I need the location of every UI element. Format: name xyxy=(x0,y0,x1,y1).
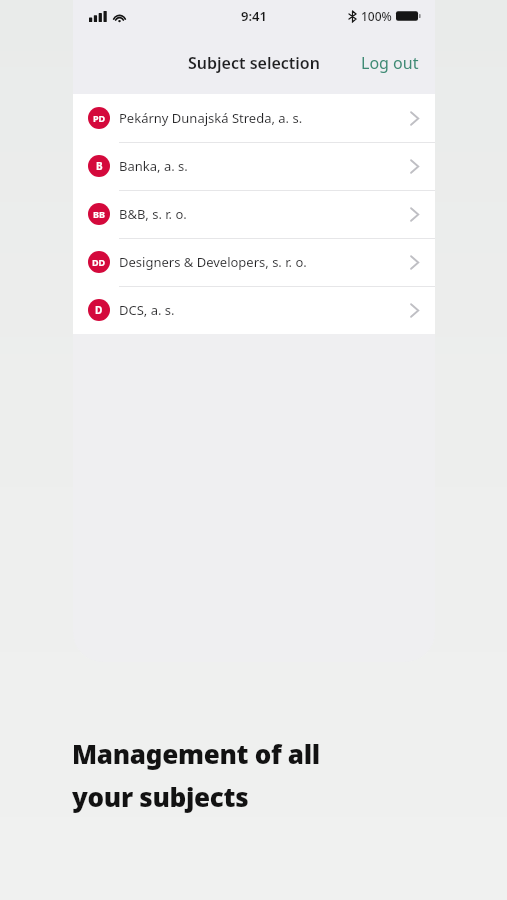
staticText: 100% xyxy=(361,8,392,24)
button[interactable]: Log out xyxy=(351,44,429,82)
staticText: your subjects xyxy=(72,779,249,814)
staticText: B xyxy=(96,159,103,173)
staticText: Management of all xyxy=(72,736,320,771)
button[interactable]: BB xyxy=(73,190,435,238)
staticText: Designers & Developers, s. r. o. xyxy=(119,253,307,271)
staticText: DD xyxy=(92,256,106,268)
staticText: 9:41 xyxy=(241,7,267,25)
button[interactable]: B xyxy=(73,142,435,190)
staticText: Banka, a. s. xyxy=(119,157,188,175)
button[interactable]: D xyxy=(73,286,435,334)
other: Open B&B, s. r. o. xyxy=(410,207,419,222)
other: Open Banka, a. s. xyxy=(410,159,419,174)
staticText: Log out xyxy=(361,52,419,74)
button[interactable]: PD xyxy=(73,94,435,142)
other: Open Designers & Developers, s. r. o. xyxy=(410,255,419,270)
button[interactable]: DD xyxy=(73,238,435,286)
staticText: DCS, a. s. xyxy=(119,301,175,319)
staticText: PD xyxy=(93,112,106,124)
staticText: D xyxy=(95,303,103,317)
staticText: Subject selection xyxy=(188,52,320,74)
other: Open DCS, a. s. xyxy=(410,303,419,318)
staticText: B&B, s. r. o. xyxy=(119,205,187,223)
staticText: BB xyxy=(93,208,105,220)
staticText: Pekárny Dunajská Streda, a. s. xyxy=(119,109,303,127)
other: Open Pekárny Dunajská Streda, a. s. xyxy=(410,111,419,126)
